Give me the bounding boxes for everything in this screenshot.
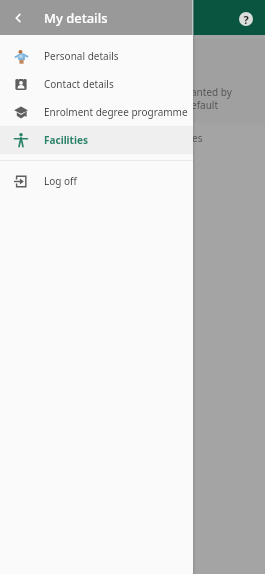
- button[interactable]: Close navigation drawer: [193, 0, 265, 574]
- staticText: ?: [243, 12, 249, 27]
- staticText: Contact details: [44, 77, 114, 91]
- staticText: Enrolment degree programme: [44, 105, 188, 119]
- button[interactable]: Enrolment degree programme: [0, 98, 193, 126]
- staticText: anted by: [191, 85, 232, 99]
- button[interactable]: Facilities: [0, 126, 193, 154]
- button[interactable]: Contact details: [0, 70, 193, 98]
- button[interactable]: Personal details: [0, 42, 193, 70]
- staticText: Log off: [44, 174, 77, 188]
- button[interactable]: Navigate up: [0, 0, 35, 35]
- staticText: Personal details: [44, 49, 119, 63]
- staticText: Facilities: [44, 133, 88, 147]
- button[interactable]: Help: [234, 7, 258, 31]
- button[interactable]: Log off: [0, 167, 193, 195]
- staticText: My details: [44, 9, 108, 27]
- staticText: es: [192, 131, 203, 145]
- staticText: efault: [191, 98, 219, 112]
